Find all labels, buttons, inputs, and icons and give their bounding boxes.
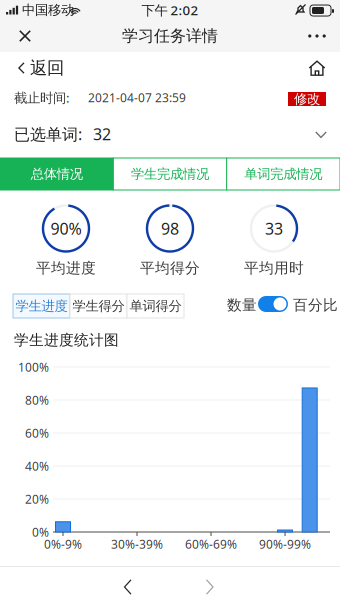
staticText: 已选单词: xyxy=(14,123,82,145)
staticText: 0%-9% xyxy=(44,536,82,552)
staticText: 学生进度统计图 xyxy=(14,331,119,349)
staticText: 单词完成情况 xyxy=(244,166,322,182)
button[interactable]: Home xyxy=(300,54,334,82)
button[interactable]: 学生得分 xyxy=(70,294,127,318)
button[interactable]: Expand word list xyxy=(304,122,338,148)
button[interactable]: 总体情况 xyxy=(0,158,113,190)
button[interactable]: 单词完成情况 xyxy=(227,158,340,190)
staticText: 2021-04-07 23:59 xyxy=(88,89,186,105)
staticText: 90% xyxy=(50,218,81,239)
staticText: 学生完成情况 xyxy=(131,166,209,182)
button[interactable]: 学生进度 xyxy=(13,294,70,318)
staticText: 学习任务详情 xyxy=(122,26,218,46)
button[interactable]: 单词得分 xyxy=(127,294,184,318)
staticText: 98 xyxy=(161,218,179,239)
staticText: 平均用时 xyxy=(244,259,304,277)
staticText: 学生进度 xyxy=(15,298,67,314)
staticText: 中国移动 xyxy=(22,2,74,18)
staticText: 40% xyxy=(25,458,49,474)
staticText: 80% xyxy=(25,392,49,408)
staticText: 返回 xyxy=(30,57,64,79)
button[interactable]: 学生完成情况 xyxy=(113,158,227,190)
staticText: 总体情况 xyxy=(31,166,83,182)
staticText: 平均得分 xyxy=(140,259,200,277)
staticText: 单词得分 xyxy=(129,298,181,314)
staticText: 0% xyxy=(32,524,49,540)
button[interactable]: 修改 xyxy=(288,92,326,106)
staticText: 截止时间: xyxy=(14,89,70,106)
staticText: 60%-69% xyxy=(185,536,237,552)
button[interactable]: 返回 xyxy=(12,54,102,82)
staticText: 修改 xyxy=(294,91,320,107)
staticText: 100% xyxy=(18,359,49,375)
button[interactable]: Toggle between count and percentage xyxy=(258,296,288,312)
staticText: 数量 xyxy=(227,296,257,314)
staticText: 百分比 xyxy=(293,296,338,314)
staticText: 32 xyxy=(93,123,111,145)
staticText: 60% xyxy=(25,425,49,441)
staticText: 90%-99% xyxy=(259,536,311,552)
staticText: 20% xyxy=(25,491,49,507)
button[interactable]: Close xyxy=(6,20,44,52)
staticText: 学生得分 xyxy=(72,298,124,314)
button[interactable]: More options xyxy=(298,20,336,52)
staticText: 33 xyxy=(265,218,283,239)
button[interactable]: Forward xyxy=(190,570,230,604)
staticText: 30%-39% xyxy=(111,536,163,552)
button[interactable]: Back xyxy=(108,570,148,604)
staticText: 平均进度 xyxy=(36,259,96,277)
staticText: 下午 2:02 xyxy=(141,1,198,19)
